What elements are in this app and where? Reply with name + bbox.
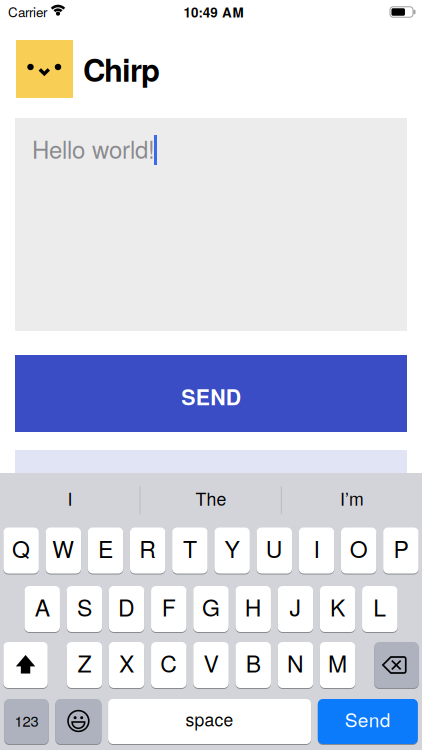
staticText: B [246,646,261,679]
staticText: O [350,531,368,564]
button[interactable]: Q [3,527,39,573]
staticText: F [162,590,176,623]
button[interactable]: N [278,642,313,688]
button[interactable]: A [24,586,60,632]
staticText: 10:49 AM [184,2,243,22]
staticText: A [35,590,50,623]
button[interactable]: Emoji [55,699,101,744]
staticText: Hello world! [32,131,155,166]
button[interactable]: P [383,527,419,573]
staticText: G [202,590,220,623]
button[interactable]: The [146,476,276,520]
staticText: D [118,590,135,623]
staticText: X [119,646,134,679]
staticText: R [139,531,156,564]
staticText: C [160,646,177,679]
button[interactable]: SEND [15,355,407,432]
staticText: Z [77,646,91,679]
button[interactable]: X [109,642,144,688]
button[interactable]: D [109,586,144,632]
staticText: space [186,706,234,732]
button[interactable]: V [193,642,229,688]
button[interactable]: space [108,699,311,744]
button[interactable]: K [320,586,355,632]
staticText: J [289,590,301,623]
button[interactable]: Shift [3,642,48,688]
staticText: W [52,531,74,564]
button[interactable]: C [151,642,187,688]
staticText: U [266,531,283,564]
button[interactable]: G [193,586,229,632]
staticText: N [287,646,304,679]
staticText: Carrier [8,2,47,21]
staticText: Y [225,531,240,564]
staticText: K [330,590,345,623]
staticText: I [67,485,72,511]
staticText: The [195,485,226,511]
staticText: H [245,590,262,623]
button[interactable]: R [130,527,165,573]
staticText: Chirp [83,47,160,91]
staticText: T [183,531,197,564]
staticText: I [313,531,319,564]
button[interactable]: I [5,476,135,520]
staticText: SEND [181,381,241,412]
staticText: Q [12,531,30,564]
button[interactable]: B [235,642,271,688]
button[interactable]: Send [318,699,418,744]
staticText: I’m [340,485,364,511]
button[interactable]: F [151,586,187,632]
staticText: V [203,646,218,679]
staticText: S [77,590,92,623]
button[interactable]: I’m [287,476,417,520]
staticText: M [328,646,347,679]
button[interactable]: M [320,642,355,688]
button[interactable]: I [299,527,334,573]
staticText: E [98,531,113,564]
staticText: P [393,531,408,564]
button[interactable]: Z [67,642,102,688]
button[interactable]: L [362,586,397,632]
button[interactable]: J [278,586,313,632]
button[interactable]: H [235,586,271,632]
button[interactable]: Y [214,527,250,573]
button[interactable]: T [172,527,208,573]
button[interactable]: E [88,527,123,573]
staticText: L [373,590,386,623]
staticText: 123 [14,710,38,731]
button[interactable]: Delete [374,642,419,688]
button[interactable]: U [256,527,292,573]
button[interactable]: O [341,527,376,573]
button[interactable]: W [45,527,81,573]
button[interactable]: Numbers [4,699,49,744]
button[interactable]: S [67,586,102,632]
staticText: Send [345,705,391,733]
